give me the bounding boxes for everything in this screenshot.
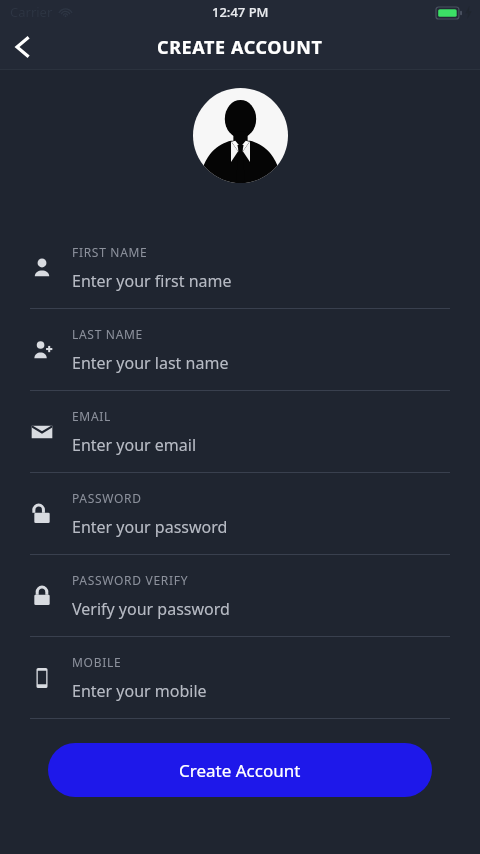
staticText: Enter your first name [72,270,232,292]
staticText: Enter your password [72,516,228,538]
staticText: 12:47 PM [212,3,269,21]
staticText: MOBILE [72,654,122,670]
staticText: LAST NAME [72,326,143,342]
button[interactable]: FIRST NAME [0,227,480,309]
button[interactable]: Profile photo [193,88,288,183]
staticText: Enter your mobile [72,680,207,702]
button[interactable]: LAST NAME [0,309,480,391]
staticText: PASSWORD [72,490,142,506]
button[interactable]: MOBILE [0,637,480,719]
staticText: Create Account [179,759,301,782]
staticText: EMAIL [72,408,112,424]
staticText: Verify your password [72,598,230,620]
staticText: PASSWORD VERIFY [72,572,189,588]
button[interactable]: EMAIL [0,391,480,473]
button[interactable]: PASSWORD VERIFY [0,555,480,637]
staticText: FIRST NAME [72,244,148,260]
button[interactable]: Back [0,24,46,70]
button[interactable]: Create Account [48,743,432,797]
staticText: Enter your last name [72,352,229,374]
staticText: Enter your email [72,434,197,456]
staticText: CREATE ACCOUNT [157,35,323,60]
button[interactable]: PASSWORD [0,473,480,555]
staticText: Carrier [10,3,53,21]
